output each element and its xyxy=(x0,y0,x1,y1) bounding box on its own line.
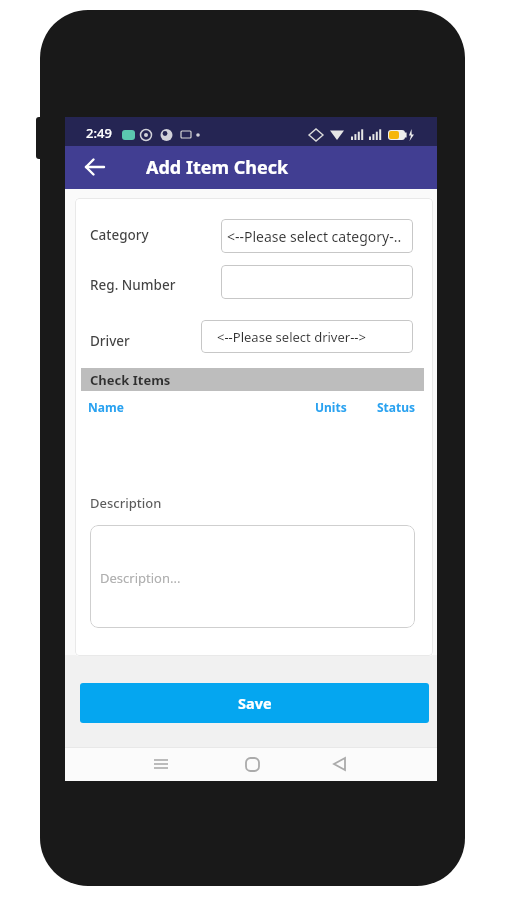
staticText: <--Please select driver--> xyxy=(217,328,366,346)
staticText: Reg. Number xyxy=(90,276,176,294)
staticText: Driver xyxy=(90,332,130,350)
button[interactable] xyxy=(79,151,111,183)
button[interactable]: Description... xyxy=(90,525,415,628)
staticText: Save xyxy=(238,693,272,713)
button[interactable] xyxy=(324,749,354,779)
button[interactable]: <--Please select driver--> xyxy=(201,320,413,353)
staticText: Name xyxy=(88,399,124,415)
button[interactable]: Save xyxy=(80,683,429,723)
staticText: Category xyxy=(90,226,149,244)
button[interactable]: <--Please select category-.. xyxy=(221,219,413,253)
staticText: Description... xyxy=(100,569,181,587)
staticText: Add Item Check xyxy=(146,155,289,180)
staticText: Units xyxy=(315,399,347,415)
button[interactable] xyxy=(146,749,176,779)
staticText: Description xyxy=(90,494,162,512)
staticText: <--Please select category-.. xyxy=(227,227,402,246)
staticText: Status xyxy=(377,399,416,415)
staticText: Check Items xyxy=(90,371,171,389)
staticText: 2:49 xyxy=(86,124,112,142)
button[interactable] xyxy=(237,749,267,779)
button[interactable] xyxy=(221,265,413,299)
